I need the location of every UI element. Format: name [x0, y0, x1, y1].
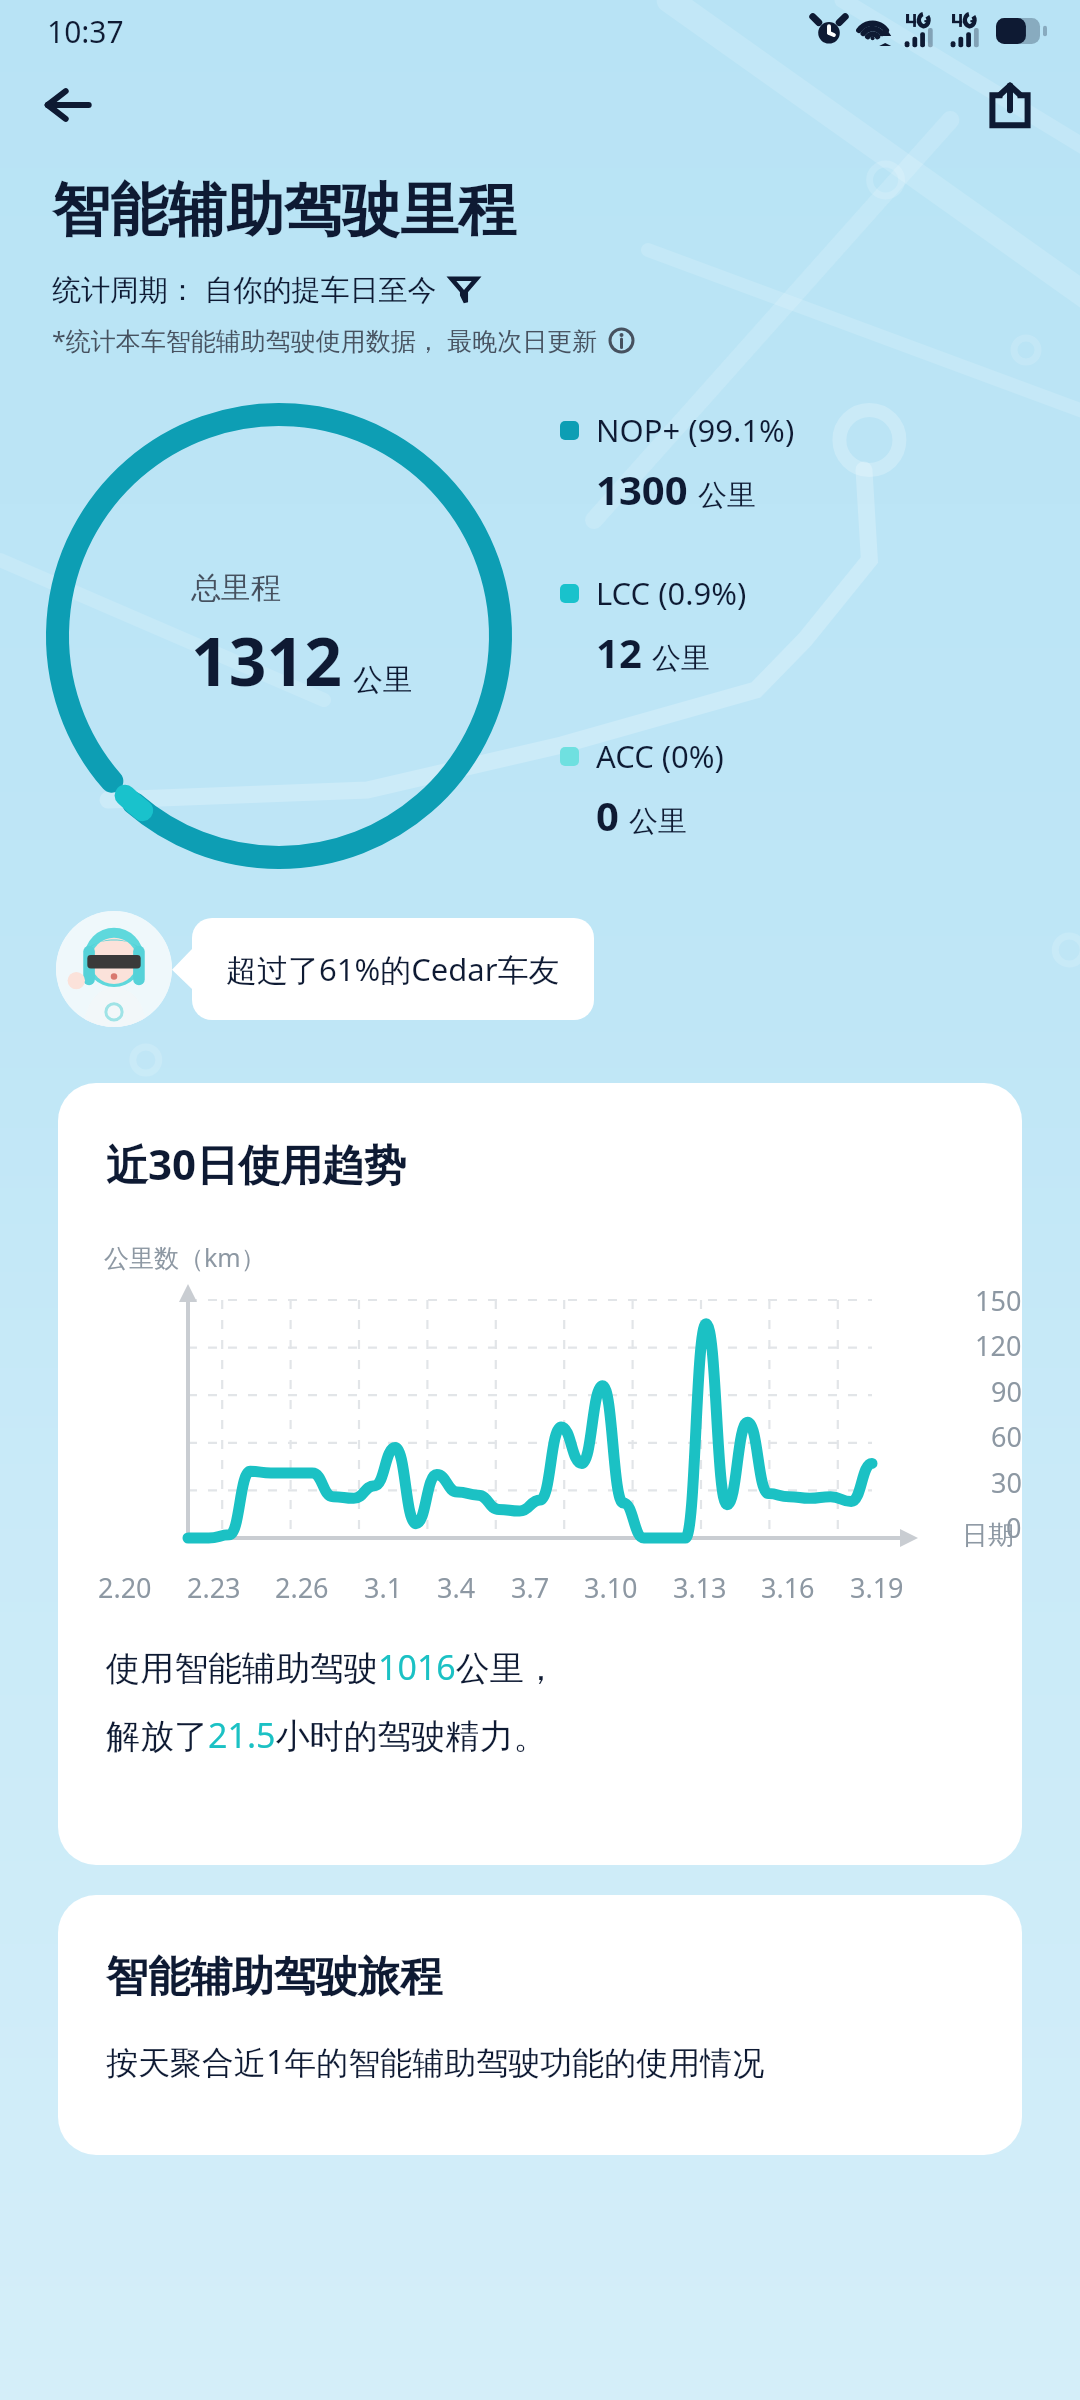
staticText: 2.20: [98, 1569, 152, 1606]
button[interactable]: 统计周期： 自你的提车日至今: [52, 269, 479, 309]
button[interactable]: *统计本车智能辅助驾驶使用数据， 最晚次日更新: [52, 323, 635, 357]
staticText: 公里数（km）: [104, 1240, 266, 1274]
button[interactable]: 智能辅助驾驶旅程: [58, 1895, 1022, 2155]
staticText: 2.26: [275, 1569, 329, 1606]
staticText: 统计周期： 自你的提车日至今: [52, 269, 437, 309]
staticText: ACC (0%): [596, 735, 724, 777]
staticText: 2.23: [187, 1569, 241, 1606]
staticText: 3.16: [761, 1569, 815, 1606]
staticText: 0: [1006, 1509, 1022, 1546]
staticText: 90: [991, 1373, 1022, 1410]
staticText: 公里: [353, 661, 413, 699]
button[interactable]: Avatar: [56, 911, 172, 1027]
button[interactable]: 超过了61%的Cedar车友: [192, 918, 594, 1020]
staticText: 60: [991, 1418, 1022, 1455]
staticText: 解放了21.5小时的驾驶精力。: [106, 1712, 548, 1758]
staticText: 3.4: [437, 1569, 476, 1606]
button[interactable]: ACC (0%): [560, 735, 724, 842]
staticText: 日期: [962, 1519, 1014, 1552]
staticText: 12: [596, 625, 642, 679]
staticText: 3.7: [511, 1569, 550, 1606]
button[interactable]: 近30日使用趋势: [58, 1083, 1022, 1865]
staticText: 10:37: [47, 11, 124, 52]
staticText: 1312: [191, 615, 343, 705]
staticText: 使用智能辅助驾驶1016公里，: [106, 1644, 558, 1690]
button[interactable]: Back: [30, 67, 106, 143]
staticText: 0: [596, 788, 619, 842]
staticText: NOP+ (99.1%): [596, 409, 795, 451]
staticText: 120: [975, 1327, 1022, 1364]
staticText: 智能辅助驾驶里程: [52, 174, 516, 247]
staticText: 按天聚合近1年的智能辅助驾驶功能的使用情况: [106, 2040, 765, 2084]
staticText: LCC (0.9%): [596, 572, 747, 614]
staticText: 超过了61%的Cedar车友: [226, 948, 560, 990]
staticText: 总里程: [191, 569, 281, 607]
button[interactable]: NOP+ (99.1%): [560, 409, 795, 516]
button[interactable]: Share: [972, 67, 1048, 143]
staticText: 3.13: [673, 1569, 727, 1606]
staticText: 公里: [652, 640, 710, 677]
staticText: 公里: [629, 803, 687, 840]
staticText: 3.10: [584, 1569, 638, 1606]
staticText: 公里: [698, 477, 756, 514]
staticText: 3.19: [850, 1569, 904, 1606]
staticText: 3.1: [364, 1569, 403, 1606]
staticText: 150: [975, 1282, 1022, 1319]
staticText: 智能辅助驾驶旅程: [106, 1951, 442, 2004]
staticText: 近30日使用趋势: [106, 1135, 407, 1192]
staticText: 1300: [596, 462, 688, 516]
button[interactable]: LCC (0.9%): [560, 572, 747, 679]
staticText: 30: [991, 1464, 1022, 1501]
staticText: *统计本车智能辅助驾驶使用数据， 最晚次日更新: [52, 323, 598, 357]
